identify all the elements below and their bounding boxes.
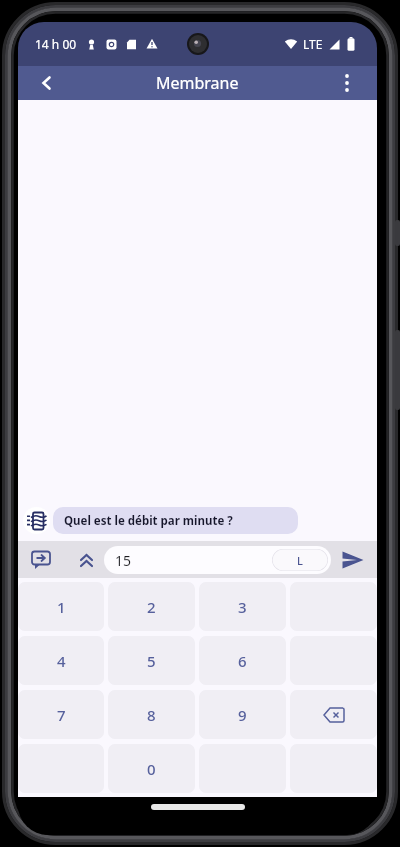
staticText: 14 h 00 — [35, 36, 77, 52]
button[interactable]: L — [272, 549, 328, 571]
staticText: 8 — [147, 705, 156, 725]
staticText: 6 — [238, 651, 247, 671]
button[interactable] — [29, 548, 53, 572]
button[interactable] — [34, 70, 60, 96]
button[interactable] — [335, 71, 359, 95]
staticText: 3 — [238, 597, 247, 617]
button[interactable]: 6 — [199, 636, 286, 685]
button[interactable]: 5 — [108, 636, 195, 685]
button[interactable]: 0 — [108, 744, 195, 793]
button[interactable]: 8 — [108, 690, 195, 739]
staticText: Quel est le débit par minute ? — [64, 513, 233, 529]
staticText: 0 — [147, 759, 156, 779]
staticText: 1 — [57, 597, 66, 617]
button[interactable]: Quel est le débit par minute ? — [53, 507, 298, 534]
button[interactable]: 2 — [108, 582, 195, 631]
button[interactable]: 1 — [18, 582, 104, 631]
staticText: 4 — [57, 651, 66, 671]
button[interactable] — [340, 547, 366, 573]
button[interactable] — [290, 690, 377, 739]
staticText: 9 — [238, 705, 247, 725]
button[interactable]: 7 — [18, 690, 104, 739]
staticText: Membrane — [156, 72, 239, 94]
staticText: 5 — [147, 651, 156, 671]
button[interactable]: 9 — [199, 690, 286, 739]
button[interactable] — [75, 549, 97, 571]
staticText: L — [297, 553, 303, 568]
staticText: LTE — [303, 36, 323, 52]
staticText: 2 — [147, 597, 156, 617]
staticText: 15 — [115, 551, 132, 570]
button[interactable]: 4 — [18, 636, 104, 685]
staticText: 7 — [57, 705, 66, 725]
button[interactable]: 3 — [199, 582, 286, 631]
